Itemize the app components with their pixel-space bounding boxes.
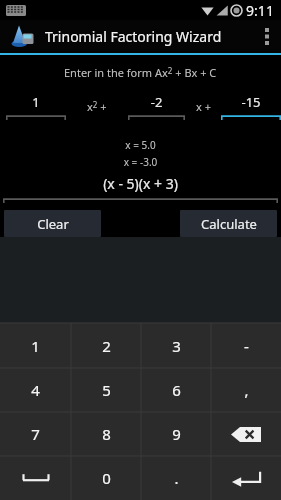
button[interactable]: - xyxy=(211,323,281,368)
staticText: 9:11 xyxy=(246,1,274,20)
staticText: 9 xyxy=(172,424,181,444)
button[interactable]: 5 xyxy=(71,368,141,412)
button[interactable]: Delete xyxy=(211,412,281,456)
button[interactable]: 4 xyxy=(0,368,71,412)
button[interactable]: -15 xyxy=(221,93,281,120)
button[interactable]: 6 xyxy=(141,368,211,412)
staticText: -15 xyxy=(221,93,281,111)
staticText: x2 + xyxy=(87,99,107,115)
staticText: . xyxy=(174,468,179,488)
button[interactable]: Clear xyxy=(4,210,101,237)
button[interactable]: Calculate xyxy=(180,210,277,237)
button[interactable]: Enter xyxy=(211,456,281,500)
button[interactable]: 1 xyxy=(6,93,66,120)
button[interactable]: 0 xyxy=(71,456,141,500)
staticText: -2 xyxy=(128,93,185,111)
staticText: x = 5.0 xyxy=(0,138,281,152)
staticText: 2 xyxy=(102,336,111,356)
staticText: 0 xyxy=(102,468,111,488)
staticText: (x - 5)(x + 3) xyxy=(0,174,281,193)
staticText: 7 xyxy=(31,424,40,444)
button[interactable]: 2 xyxy=(71,323,141,368)
button[interactable]: 8 xyxy=(71,412,141,456)
button[interactable]: More options xyxy=(253,20,281,53)
staticText: , xyxy=(244,380,249,400)
button[interactable]: 1 xyxy=(0,323,71,368)
staticText: - xyxy=(244,336,249,356)
button[interactable]: , xyxy=(211,368,281,412)
button[interactable]: 9 xyxy=(141,412,211,456)
button[interactable]: . xyxy=(141,456,211,500)
staticText: x = -3.0 xyxy=(0,155,281,169)
staticText: 1 xyxy=(31,336,40,356)
staticText: 1 xyxy=(6,93,66,111)
staticText: Trinomial Factoring Wizard xyxy=(45,27,222,46)
staticText: Clear xyxy=(37,215,69,233)
staticText: Calculate xyxy=(201,215,257,233)
staticText: 8 xyxy=(102,424,111,444)
staticText: 6 xyxy=(172,380,181,400)
button[interactable]: -2 xyxy=(128,93,185,120)
button[interactable]: 7 xyxy=(0,412,71,456)
staticText: 4 xyxy=(31,380,40,400)
button[interactable]: Space xyxy=(0,456,71,500)
staticText: Enter in the form Ax2 + Bx + C xyxy=(64,65,217,81)
staticText: x + xyxy=(196,99,211,114)
staticText: 3 xyxy=(172,336,181,356)
button[interactable]: 3 xyxy=(141,323,211,368)
staticText: 5 xyxy=(102,380,111,400)
